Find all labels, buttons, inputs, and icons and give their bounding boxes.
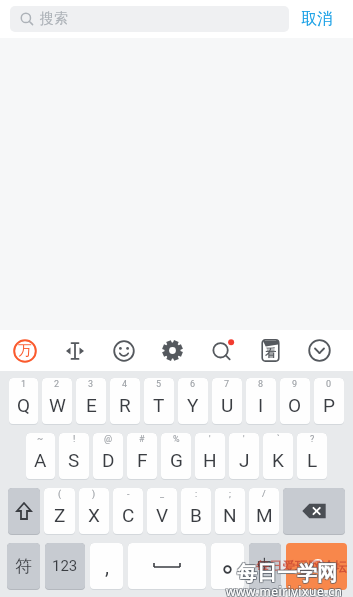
button[interactable]: 5: [144, 378, 174, 424]
staticText: `: [277, 434, 280, 445]
staticText: ): [92, 489, 96, 500]
staticText: 2: [54, 379, 60, 390]
button[interactable]: 4: [110, 378, 140, 424]
button[interactable]: !: [59, 433, 89, 479]
button[interactable]: %: [161, 433, 191, 479]
button[interactable]: ': [229, 433, 259, 479]
staticText: N: [223, 504, 237, 526]
staticText: K: [272, 449, 284, 471]
staticText: 6: [190, 379, 196, 390]
button[interactable]: 万: [0, 330, 50, 371]
staticText: 7: [224, 379, 230, 390]
staticText: www.meiriyixue.cn: [225, 583, 342, 597]
staticText: G: [170, 449, 183, 471]
staticText: S: [68, 449, 80, 471]
staticText: J: [239, 449, 250, 471]
button[interactable]: 7: [212, 378, 242, 424]
staticText: 每日一学网: [238, 560, 338, 585]
button[interactable]: #: [127, 433, 157, 479]
button[interactable]: 3: [76, 378, 106, 424]
button[interactable]: 看: [246, 330, 295, 371]
staticText: www.meiriyixue.cn: [225, 582, 342, 597]
button[interactable]: [99, 330, 148, 371]
staticText: 每日爱玩网论坛: [256, 558, 347, 574]
button[interactable]: [283, 488, 345, 534]
staticText: ': [243, 434, 245, 445]
button[interactable]: ': [195, 433, 225, 479]
button[interactable]: `: [263, 433, 293, 479]
staticText: _: [160, 489, 165, 500]
staticText: @: [104, 434, 113, 445]
button[interactable]: (: [44, 488, 75, 534]
staticText: 搜索: [40, 10, 68, 28]
staticText: www.meiriyixue.cn: [227, 582, 344, 597]
staticText: 看: [265, 346, 276, 360]
staticText: www.meiriyixue.cn: [226, 582, 343, 597]
button[interactable]: _: [147, 488, 177, 534]
staticText: /: [262, 489, 266, 500]
button[interactable]: @: [93, 433, 123, 479]
button[interactable]: ): [79, 488, 109, 534]
button[interactable]: /: [249, 488, 279, 534]
button[interactable]: [148, 330, 197, 371]
staticText: 123: [52, 557, 78, 575]
button[interactable]: -: [113, 488, 143, 534]
button[interactable]: [295, 330, 344, 371]
button[interactable]: ?: [297, 433, 327, 479]
button[interactable]: 123: [45, 543, 85, 589]
button[interactable]: ,: [90, 543, 123, 589]
staticText: %: [173, 434, 180, 445]
button[interactable]: [50, 330, 99, 371]
staticText: B: [190, 504, 202, 526]
button[interactable]: 搜索: [10, 6, 289, 32]
button[interactable]: 中: [249, 543, 281, 589]
button[interactable]: ~: [26, 433, 55, 479]
staticText: E: [86, 394, 97, 416]
button[interactable]: 0: [314, 378, 344, 424]
staticText: 中: [257, 556, 273, 576]
staticText: ;: [229, 489, 231, 500]
button[interactable]: :: [181, 488, 211, 534]
staticText: !: [73, 434, 76, 445]
staticText: 每日一学网: [237, 561, 337, 586]
staticText: 每日一学网: [238, 562, 338, 587]
button[interactable]: ;: [215, 488, 245, 534]
staticText: Z: [54, 504, 66, 526]
button[interactable]: 取消: [289, 0, 345, 38]
button[interactable]: 8: [246, 378, 276, 424]
button[interactable]: 9: [280, 378, 310, 424]
staticText: :: [195, 489, 198, 500]
button[interactable]: 2: [42, 378, 72, 424]
button[interactable]: 符: [7, 543, 40, 589]
button[interactable]: [197, 330, 246, 371]
staticText: 每日一学网: [237, 562, 337, 587]
staticText: 5: [156, 379, 162, 390]
button[interactable]: [211, 543, 244, 589]
staticText: www.meiriyixue.cn: [226, 584, 343, 597]
staticText: Y: [187, 394, 199, 416]
staticText: P: [323, 394, 335, 416]
button[interactable]: 6: [178, 378, 208, 424]
button[interactable]: [8, 488, 40, 534]
staticText: W: [49, 394, 66, 416]
staticText: Q: [17, 394, 31, 416]
button[interactable]: [286, 543, 347, 590]
staticText: ': [209, 434, 211, 445]
staticText: www.meiriyixue.cn: [226, 583, 343, 597]
staticText: ,: [105, 555, 109, 578]
staticText: www.meiriyixue.cn: [227, 583, 344, 597]
staticText: 每日一学网: [238, 561, 338, 586]
staticText: 每日一学网: [236, 561, 336, 586]
button[interactable]: [128, 543, 206, 589]
staticText: U: [221, 394, 234, 416]
staticText: L: [307, 449, 318, 471]
staticText: ?: [310, 434, 315, 445]
staticText: 每日一学网: [236, 562, 336, 587]
staticText: H: [203, 449, 217, 471]
button[interactable]: 1: [9, 378, 38, 424]
staticText: 符: [15, 556, 32, 577]
staticText: F: [137, 449, 148, 471]
staticText: #: [139, 434, 145, 445]
staticText: 每日一学网: [236, 560, 336, 585]
staticText: 每日一学网: [237, 560, 337, 585]
